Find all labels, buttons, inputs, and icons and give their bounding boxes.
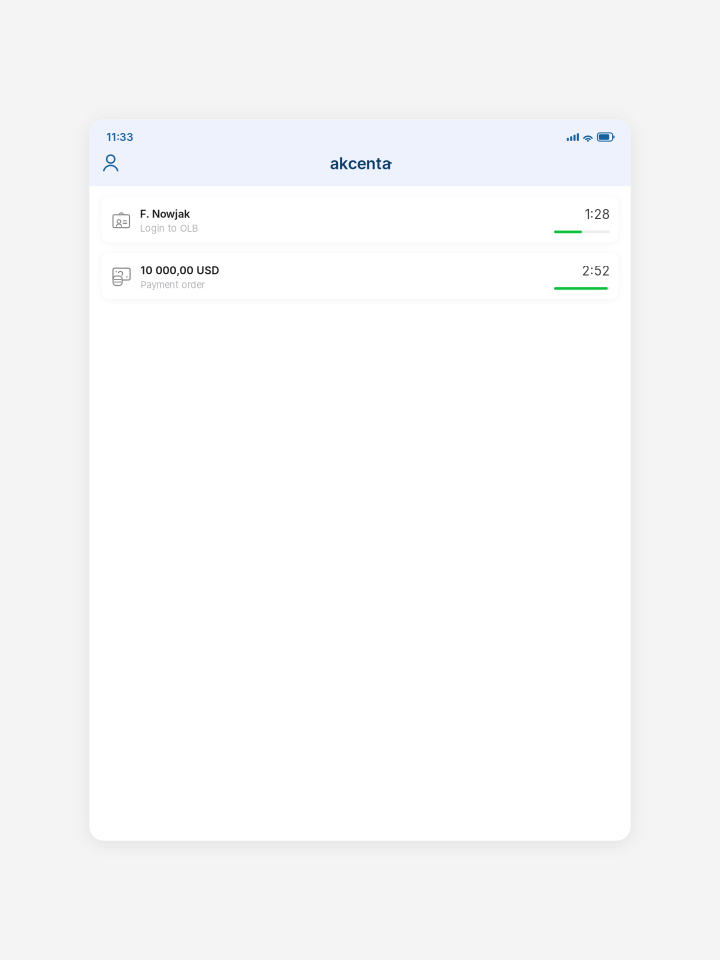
- staticText: Payment order: [141, 279, 206, 291]
- button[interactable]: Account: [102, 151, 128, 175]
- button[interactable]: F. Nowjak: [101, 196, 618, 242]
- staticText: 11:33: [106, 130, 133, 143]
- staticText: Login to OLB: [140, 223, 198, 234]
- staticText: 10 000,00 USD: [141, 264, 220, 277]
- staticText: akcenta: [330, 154, 391, 173]
- staticText: 2:52: [582, 263, 610, 279]
- staticText: F. Nowjak: [140, 207, 190, 220]
- staticText: 1:28: [585, 207, 610, 222]
- button[interactable]: 10 000,00 USD: [101, 253, 618, 299]
